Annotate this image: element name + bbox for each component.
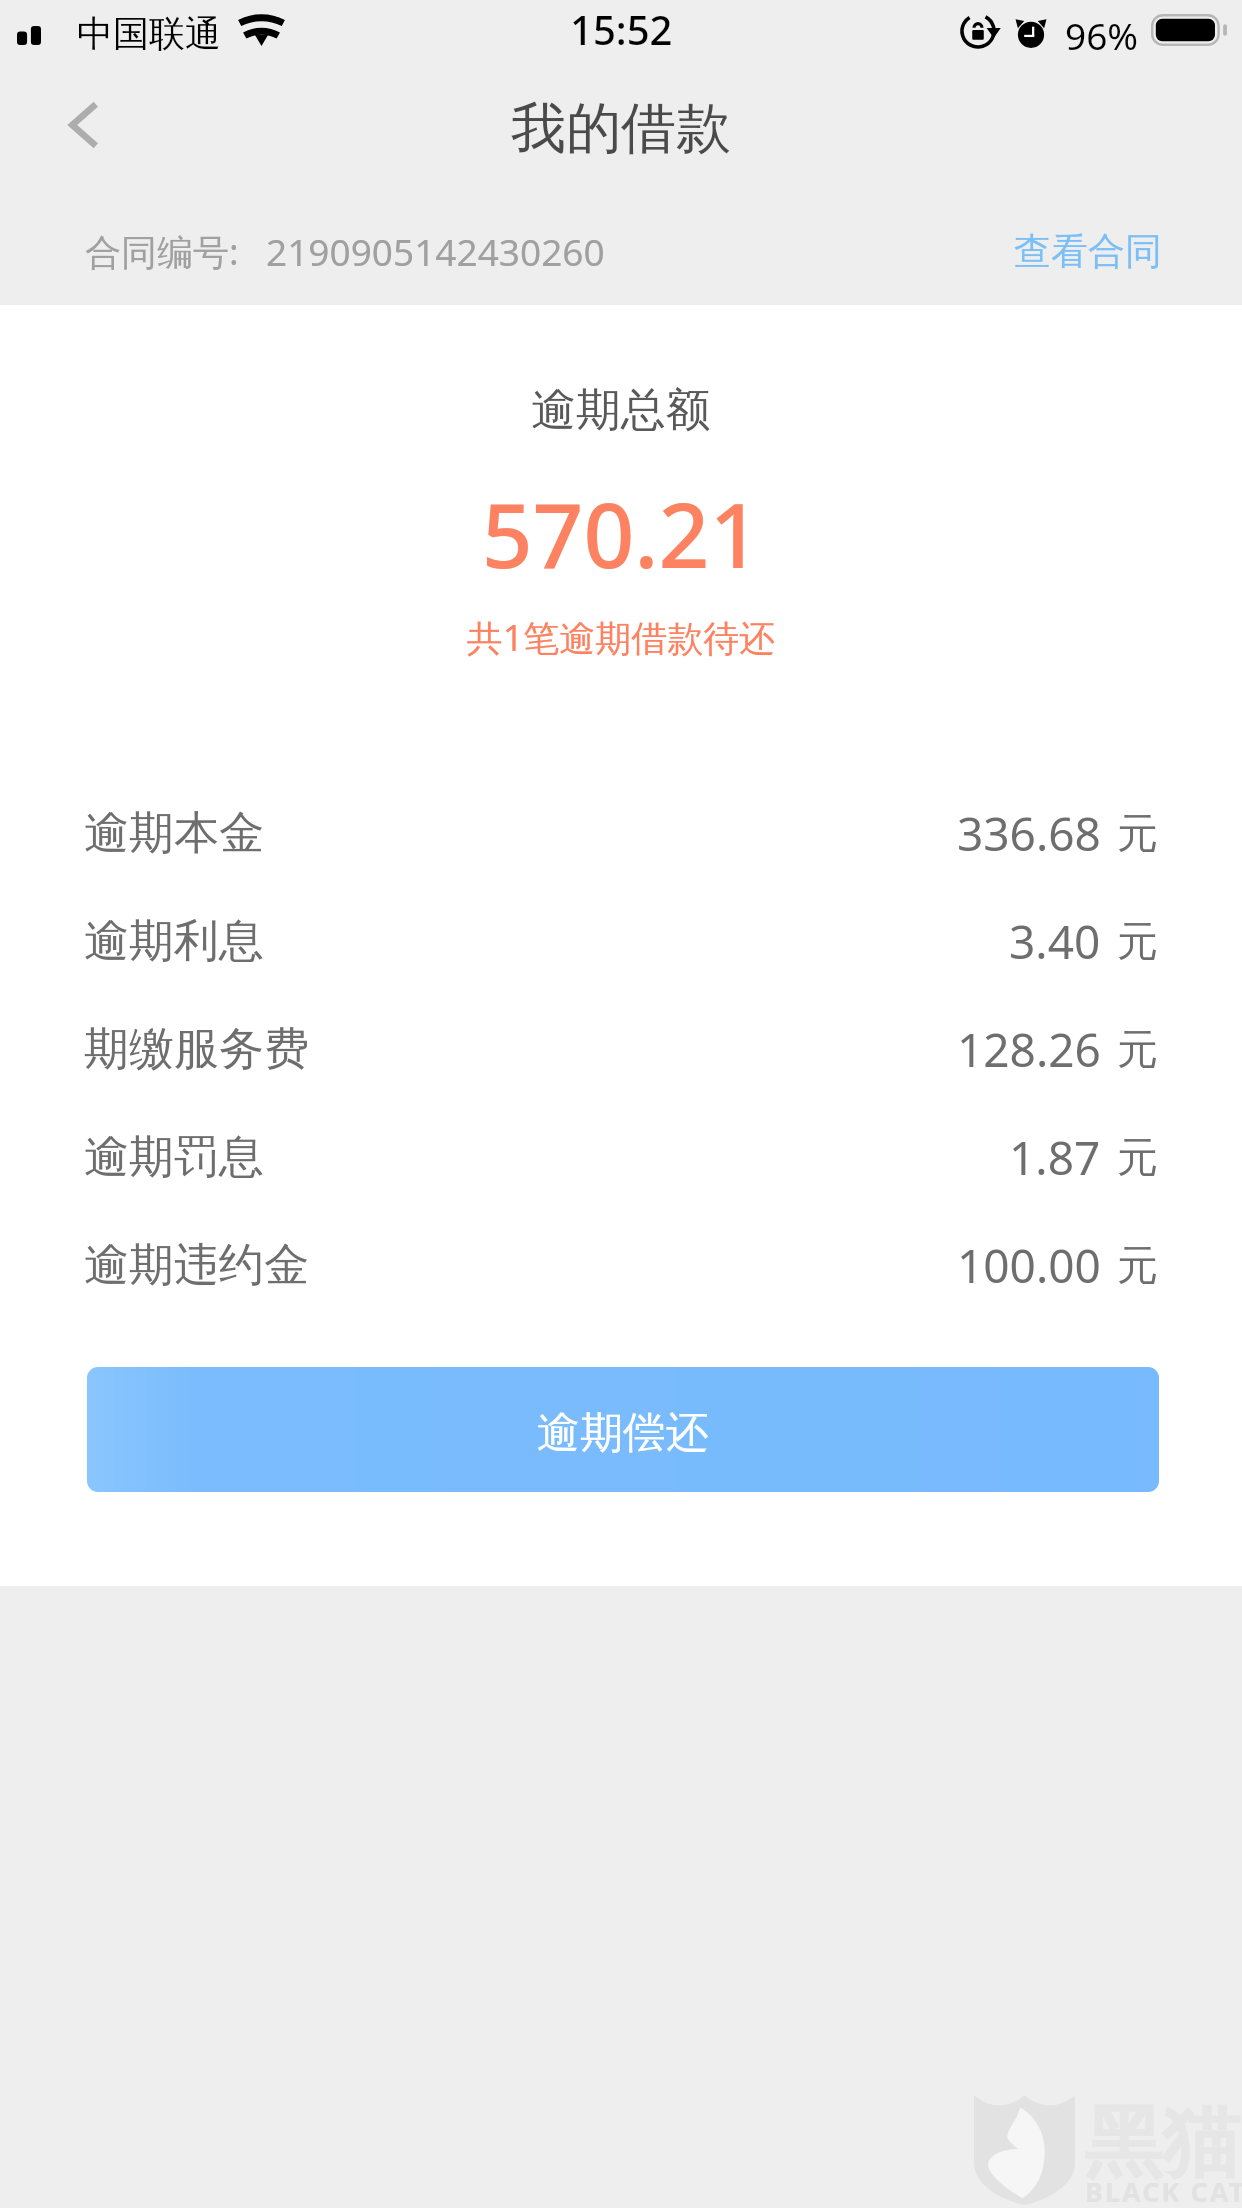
staticText: 逾期罚息 — [84, 1129, 264, 1186]
staticText: 逾期利息 — [84, 913, 264, 970]
staticText: 元 — [1117, 808, 1158, 860]
button[interactable]: 逾期偿还 — [87, 1367, 1159, 1492]
staticText: 15:52 — [570, 2, 673, 56]
button[interactable]: 逾期罚息 — [0, 1103, 1242, 1211]
staticText: 逾期本金 — [84, 805, 264, 862]
staticText: 逾期总额 — [0, 382, 1242, 439]
staticText: 128.26 — [957, 1018, 1101, 1081]
staticText: 1.87 — [1009, 1126, 1101, 1189]
staticText: 期缴服务费 — [84, 1021, 309, 1078]
button[interactable]: 期缴服务费 — [0, 995, 1242, 1103]
staticText: 2190905142430260 — [266, 226, 605, 276]
staticText: 元 — [1117, 1024, 1158, 1076]
staticText: 查看合同 — [1014, 228, 1162, 275]
staticText: 元 — [1117, 1132, 1158, 1184]
staticText: 570.21 — [0, 473, 1242, 594]
staticText: 336.68 — [957, 802, 1101, 865]
button[interactable]: 查看合同 — [992, 222, 1184, 281]
staticText: 96% — [1065, 10, 1139, 60]
staticText: 中国联通 — [77, 11, 221, 56]
staticText: BLACK CAT — [1085, 2173, 1242, 2208]
staticText: 逾期偿还 — [537, 1406, 709, 1460]
staticText: 我的借款 — [0, 94, 1242, 163]
staticText: 100.00 — [957, 1234, 1101, 1297]
staticText: 元 — [1117, 1240, 1158, 1292]
staticText: 共1笔逾期借款待还 — [0, 613, 1242, 662]
button[interactable]: 逾期违约金 — [0, 1211, 1242, 1319]
staticText: 3.40 — [1009, 910, 1101, 973]
staticText: 逾期违约金 — [84, 1237, 309, 1294]
staticText: 元 — [1117, 916, 1158, 968]
button[interactable]: 逾期利息 — [0, 887, 1242, 995]
staticText: 黑猫 — [1084, 2094, 1240, 2192]
button[interactable]: Back — [35, 76, 133, 174]
staticText: 合同编号: — [85, 227, 239, 276]
button[interactable]: 逾期本金 — [0, 779, 1242, 887]
